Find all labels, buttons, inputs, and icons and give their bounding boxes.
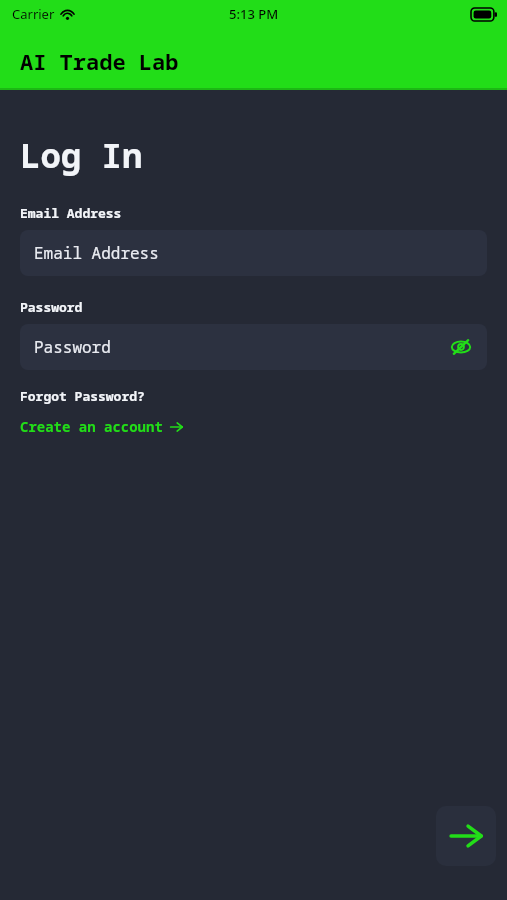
staticText: Email Address [20,204,122,222]
button[interactable]: Password [20,324,487,370]
staticText: Carrier [12,5,55,23]
staticText: AI Trade Lab [20,46,179,76]
button[interactable]: Create an account [20,417,183,436]
staticText: 5:13 PM [229,5,279,23]
staticText: Create an account [20,417,163,436]
staticText: Log In [20,132,143,178]
staticText: Password [20,298,83,316]
button[interactable]: Submit [436,806,496,866]
staticText: Forgot Password? [20,387,145,405]
button[interactable]: Forgot Password? [20,387,145,405]
staticText: Email Address [34,242,159,264]
button[interactable]: Show password [449,335,473,359]
button[interactable]: Email Address [20,230,487,276]
staticText: Password [34,336,111,358]
